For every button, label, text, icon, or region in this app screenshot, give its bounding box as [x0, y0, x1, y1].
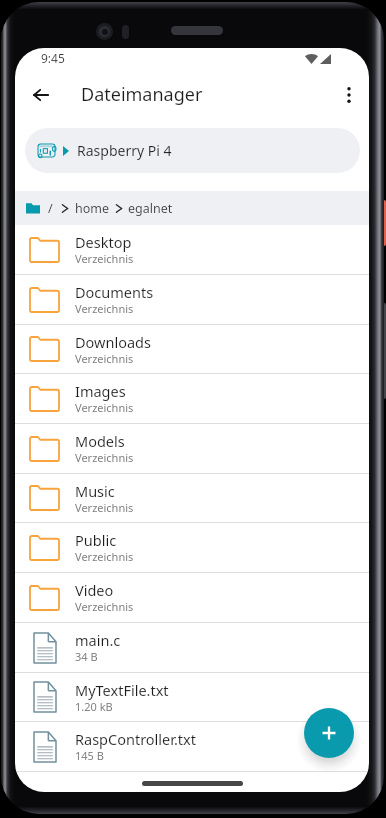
- staticText: Desktop: [75, 232, 132, 252]
- staticText: /: [48, 200, 53, 217]
- staticText: egalnet: [128, 200, 173, 217]
- staticText: Documents: [75, 282, 154, 302]
- staticText: Images: [75, 381, 126, 401]
- staticText: main.c: [75, 630, 121, 650]
- button[interactable]: Navigate up: [23, 77, 59, 113]
- staticText: MyTextFile.txt: [75, 680, 169, 700]
- staticText: 34 B: [75, 649, 98, 664]
- button[interactable]: Video: [15, 573, 369, 623]
- staticText: RaspController.txt: [75, 729, 196, 749]
- button[interactable]: Downloads: [15, 325, 369, 374]
- staticText: Music: [75, 481, 115, 501]
- button[interactable]: Images: [15, 374, 369, 424]
- staticText: 1.20 kB: [75, 699, 113, 714]
- button[interactable]: Documents: [15, 275, 369, 325]
- staticText: Verzeichnis: [75, 301, 134, 316]
- button[interactable]: Models: [15, 424, 369, 474]
- staticText: 145 B: [75, 748, 104, 763]
- staticText: Verzeichnis: [75, 500, 134, 515]
- staticText: Verzeichnis: [75, 351, 134, 366]
- staticText: Raspberry Pi 4: [77, 141, 172, 160]
- staticText: Downloads: [75, 332, 151, 352]
- staticText: home: [75, 200, 110, 217]
- staticText: Verzeichnis: [75, 599, 134, 614]
- button[interactable]: main.c: [15, 623, 369, 673]
- staticText: Dateimanager: [81, 82, 203, 107]
- button[interactable]: More options: [331, 77, 367, 113]
- staticText: Models: [75, 431, 125, 451]
- staticText: 9:45: [41, 50, 65, 66]
- staticText: Verzeichnis: [75, 251, 134, 266]
- button[interactable]: Add: [304, 708, 354, 758]
- button[interactable]: MyTextFile.txt: [15, 673, 369, 722]
- staticText: Verzeichnis: [75, 450, 134, 465]
- staticText: Verzeichnis: [75, 400, 134, 415]
- button[interactable]: Desktop: [15, 225, 369, 275]
- staticText: Public: [75, 530, 117, 550]
- staticText: Verzeichnis: [75, 549, 134, 564]
- button[interactable]: Raspberry Pi 4: [25, 128, 360, 173]
- button[interactable]: RaspController.txt: [15, 722, 369, 772]
- button[interactable]: Public: [15, 523, 369, 573]
- staticText: Video: [75, 580, 114, 600]
- button[interactable]: Music: [15, 474, 369, 523]
